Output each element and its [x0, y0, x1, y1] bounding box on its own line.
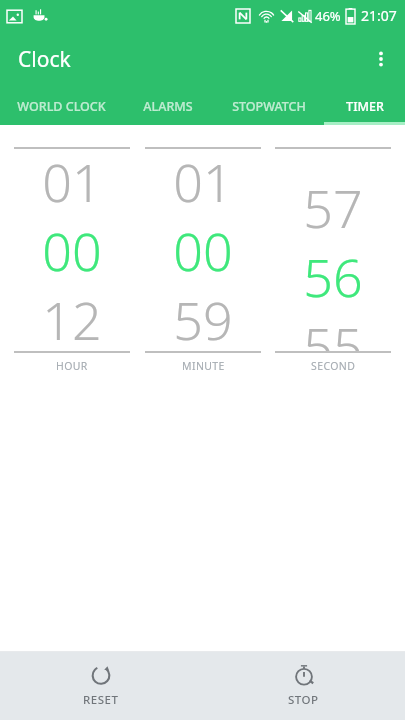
- staticText: 55: [303, 310, 363, 353]
- staticText: 57: [303, 172, 363, 243]
- staticText: RESET: [83, 692, 119, 708]
- staticText: Clock: [18, 45, 71, 74]
- staticText: 56: [303, 241, 363, 312]
- staticText: STOPWATCH: [232, 98, 306, 115]
- staticText: WORLD CLOCK: [17, 98, 106, 115]
- staticText: 01: [42, 147, 102, 217]
- staticText: SECOND: [311, 359, 356, 373]
- button[interactable]: RESET: [83, 664, 119, 708]
- button[interactable]: 01: [14, 147, 130, 373]
- staticText: STOP: [288, 692, 319, 708]
- staticText: 21:07: [361, 6, 397, 25]
- staticText: 12: [42, 284, 102, 353]
- staticText: 46%: [315, 7, 341, 25]
- staticText: HOUR: [56, 359, 88, 373]
- staticText: 01: [173, 147, 233, 217]
- staticText: MINUTE: [182, 359, 225, 373]
- button[interactable]: 57: [275, 147, 391, 373]
- staticText: ALARMS: [143, 98, 193, 115]
- staticText: TIMER: [346, 98, 384, 115]
- staticText: 00: [173, 215, 233, 286]
- button[interactable]: STOPWATCH: [213, 87, 324, 125]
- button[interactable]: STOP: [288, 664, 319, 708]
- staticText: 00: [42, 215, 102, 286]
- button[interactable]: 01: [145, 147, 261, 373]
- button[interactable]: TIMER: [324, 87, 405, 125]
- staticText: 59: [173, 284, 233, 353]
- button[interactable]: ALARMS: [123, 87, 213, 125]
- button[interactable]: WORLD CLOCK: [0, 87, 123, 125]
- button[interactable]: More options: [357, 35, 405, 83]
